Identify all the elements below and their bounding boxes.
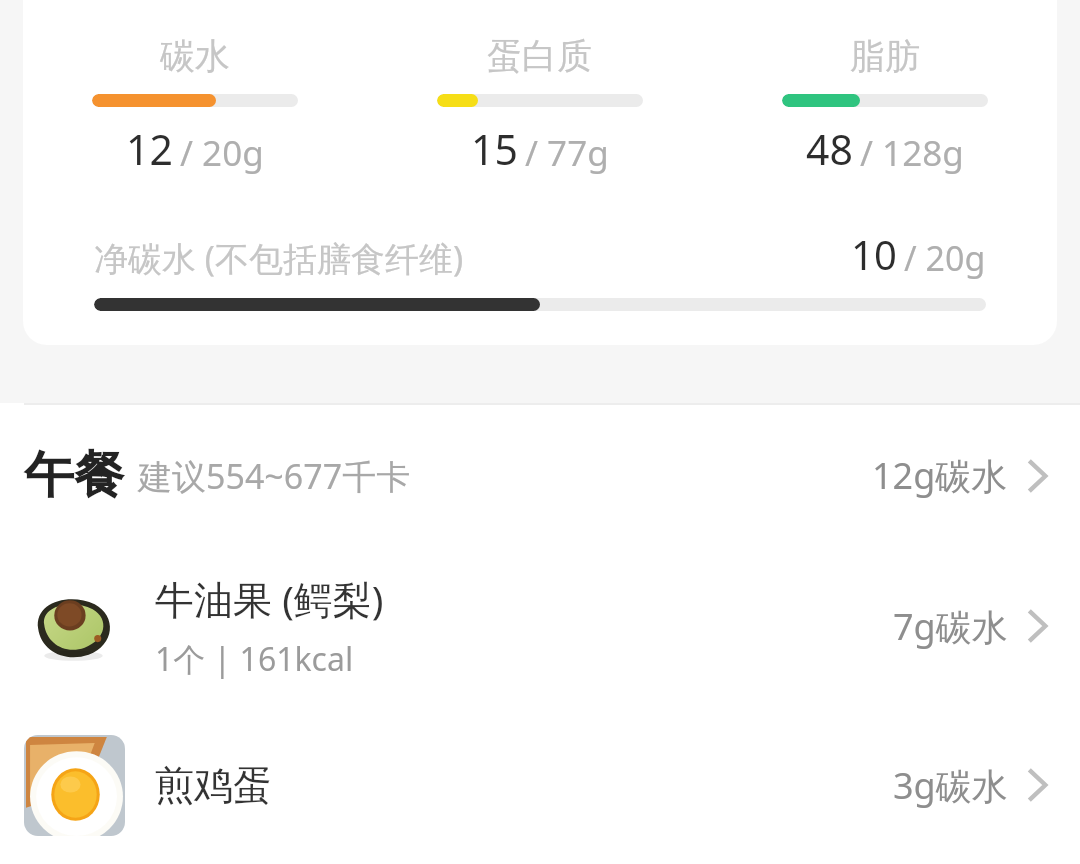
staticText: / 77g (525, 129, 609, 177)
button[interactable]: Fried egg photo (0, 706, 1080, 864)
button[interactable]: 午餐 (0, 405, 1080, 546)
staticText: 碳水 (160, 34, 230, 78)
staticText: 牛油果 (鳄梨) (155, 572, 384, 625)
staticText: 净碳水 (不包括膳食纤维) (94, 235, 464, 281)
staticText: 12 (126, 121, 173, 177)
staticText: 12g碳水 (872, 451, 1008, 500)
other: Avocado photo (24, 576, 125, 677)
staticText: 7g碳水 (893, 602, 1008, 651)
staticText: / 20g (180, 129, 264, 177)
staticText: 午餐 (24, 444, 124, 507)
staticText: 10 (851, 227, 897, 281)
staticText: 15 (471, 121, 518, 177)
staticText: 蛋白质 (487, 34, 592, 78)
other: Fried egg photo (24, 735, 125, 836)
staticText: 煎鸡蛋 (155, 761, 272, 810)
staticText: 建议554~677千卡 (138, 453, 411, 499)
staticText: 3g碳水 (893, 761, 1008, 810)
staticText: / 128g (860, 129, 964, 177)
staticText: 脂肪 (850, 34, 920, 78)
button[interactable]: Avocado photo (0, 546, 1080, 706)
staticText: 48 (806, 121, 853, 177)
staticText: / 20g (904, 235, 986, 281)
staticText: 1个 | 161kcal (155, 637, 354, 681)
